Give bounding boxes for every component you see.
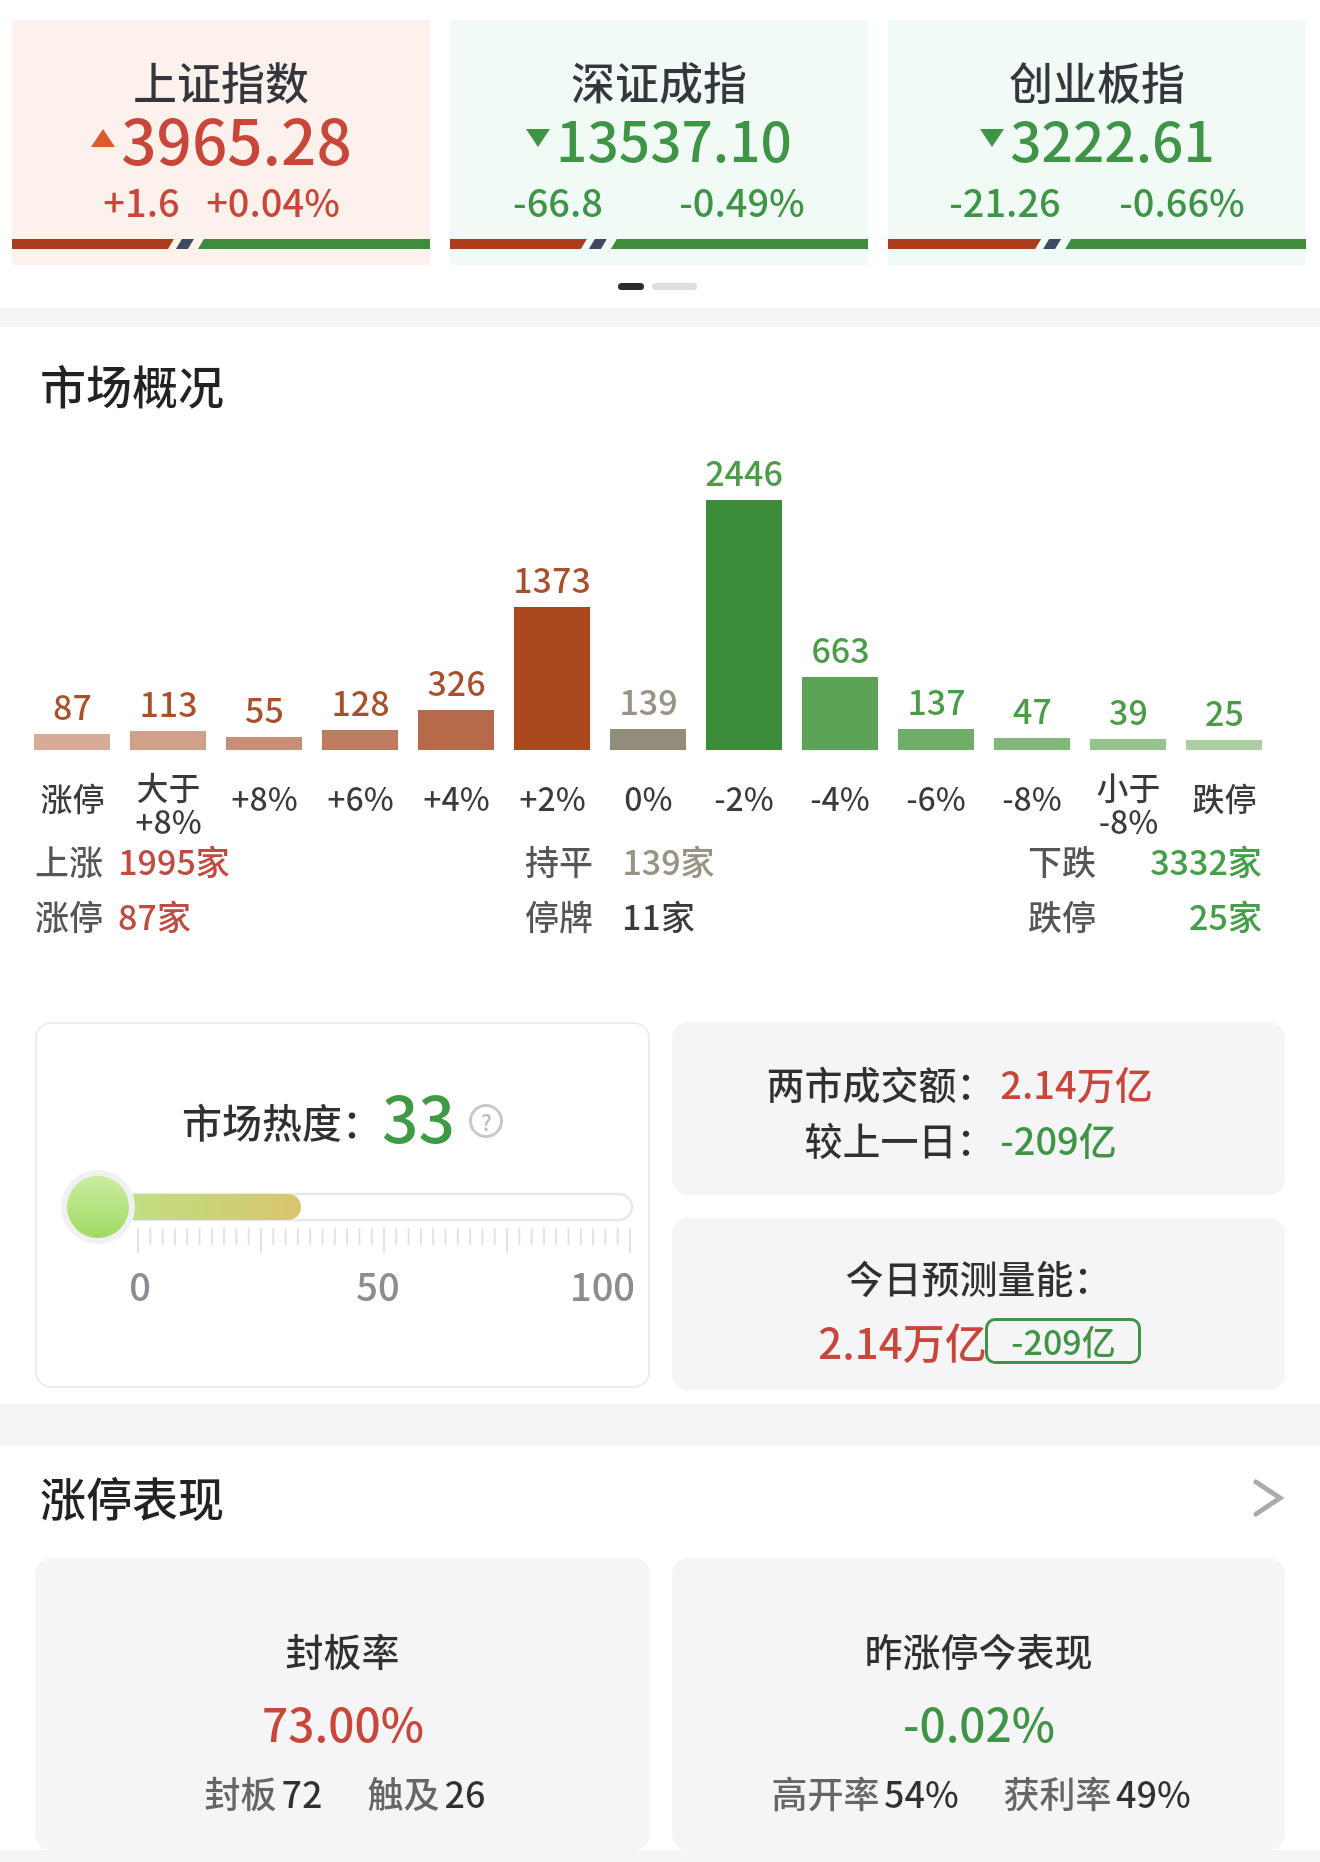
staticText: 139 — [619, 676, 678, 725]
staticText: 市场概况 — [40, 351, 224, 418]
staticText: 市场热度： — [182, 1092, 382, 1150]
staticText: -2% — [714, 774, 774, 820]
staticText: 2446 — [705, 447, 783, 496]
staticText: 封板 — [200, 1766, 281, 1818]
staticText: -209亿 — [1011, 1316, 1116, 1365]
staticText: 上涨 — [35, 836, 103, 885]
staticText: 3332家 — [1150, 836, 1262, 885]
staticText: 139家 — [622, 836, 715, 885]
staticText: 跌停 — [1192, 774, 1257, 820]
staticText: 两市成交额： — [766, 1055, 995, 1110]
staticText: 昨涨停今表现 — [864, 1622, 1093, 1677]
staticText: 72 — [281, 1766, 323, 1818]
staticText: 深证成指 — [571, 49, 747, 113]
staticText: 停牌 — [525, 891, 593, 940]
staticText: 137 — [907, 676, 966, 725]
staticText: 下跌 — [1028, 836, 1096, 885]
staticText: 涨停 — [40, 774, 105, 820]
staticText: 47 — [1013, 685, 1052, 734]
staticText: -0.49% — [679, 173, 805, 228]
staticText: 今日预测量能： — [845, 1249, 1112, 1304]
staticText: 128 — [331, 677, 390, 726]
staticText: 上证指数 — [133, 49, 309, 113]
staticText: 113 — [139, 678, 198, 727]
staticText: 33 — [382, 1069, 455, 1162]
staticText: 0 — [129, 1257, 151, 1312]
staticText: 54% — [884, 1766, 959, 1818]
staticText: +4% — [423, 774, 490, 820]
staticText: 26 — [444, 1766, 486, 1818]
staticText: 55 — [245, 684, 284, 733]
staticText: 13537.10 — [556, 98, 792, 178]
staticText: +2% — [519, 774, 586, 820]
staticText: -0.66% — [1119, 173, 1245, 228]
staticText: -21.26 — [949, 173, 1061, 228]
staticText: 100 — [570, 1257, 635, 1312]
staticText: 11家 — [622, 891, 695, 940]
staticText: ? — [481, 1105, 492, 1137]
staticText: -6% — [906, 774, 966, 820]
staticText: 87家 — [118, 891, 191, 940]
staticText: -8% — [1002, 774, 1062, 820]
staticText: 触及 — [363, 1766, 444, 1818]
staticText: 高开率 — [767, 1766, 884, 1818]
staticText: 1373 — [513, 554, 591, 603]
staticText: 73.00% — [262, 1689, 424, 1756]
staticText: 50 — [356, 1257, 400, 1312]
staticText: 87 — [53, 681, 92, 730]
staticText: 0% — [624, 774, 673, 820]
staticText: -0.02% — [903, 1689, 1055, 1756]
staticText: 2.14万亿 — [1000, 1055, 1153, 1110]
staticText: 25家 — [1189, 891, 1262, 940]
staticText: 3222.61 — [1010, 98, 1215, 178]
staticText: 持平 — [525, 836, 593, 885]
staticText: 大于 +8% — [135, 763, 202, 843]
staticText: 25 — [1205, 687, 1244, 736]
staticText: 49% — [1116, 1766, 1191, 1818]
staticText: -66.8 — [513, 173, 603, 228]
staticText: 1995家 — [118, 836, 230, 885]
staticText: 663 — [811, 624, 870, 673]
staticText: 3965.28 — [121, 93, 352, 183]
staticText: -209亿 — [1000, 1111, 1117, 1166]
staticText: 跌停 — [1028, 891, 1096, 940]
staticText: 小于 -8% — [1096, 763, 1161, 843]
staticText: 涨停表现 — [40, 1463, 224, 1530]
staticText: 326 — [427, 657, 486, 706]
staticText: +8% — [231, 774, 298, 820]
staticText: 创业板指 — [1009, 49, 1185, 113]
staticText: 封板率 — [285, 1622, 400, 1677]
staticText: +6% — [327, 774, 394, 820]
staticText: +1.6 — [103, 173, 180, 228]
staticText: 2.14万亿 — [818, 1310, 987, 1371]
staticText: +0.04% — [206, 173, 340, 228]
staticText: 较上一日： — [804, 1111, 995, 1166]
staticText: 涨停 — [35, 891, 103, 940]
staticText: 39 — [1109, 686, 1148, 735]
staticText: 获利率 — [999, 1766, 1116, 1818]
staticText: -4% — [810, 774, 870, 820]
